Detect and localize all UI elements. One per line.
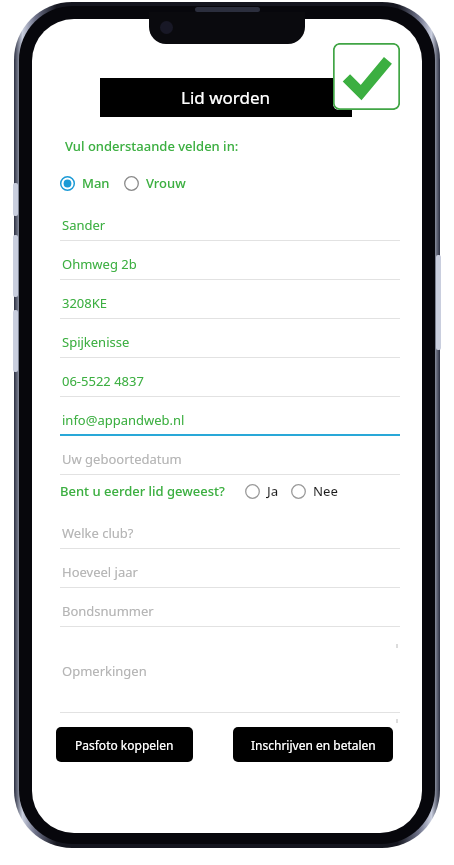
button[interactable]: 3208KE xyxy=(60,286,400,319)
button[interactable]: Pasfoto koppelen xyxy=(56,727,193,762)
staticText: Spijkenisse xyxy=(62,333,130,351)
staticText: Man xyxy=(82,174,110,192)
button[interactable]: Geselecteerd xyxy=(60,176,75,191)
staticText: Opmerkingen xyxy=(62,662,147,680)
staticText: Nee xyxy=(313,482,339,500)
staticText: Hoeveel jaar xyxy=(62,563,138,581)
staticText: Inschrijven en betalen xyxy=(251,737,376,753)
staticText: 3208KE xyxy=(62,294,108,312)
staticText: 06-5522 4837 xyxy=(62,372,144,390)
button[interactable]: Opmerkingen xyxy=(60,635,400,713)
staticText: Vul onderstaande velden in: xyxy=(65,137,239,155)
staticText: info@appandweb.nl xyxy=(62,411,185,429)
button[interactable]: Inschrijven en betalen xyxy=(233,727,393,762)
button[interactable]: Niet geselecteerd xyxy=(245,484,260,499)
button[interactable]: Sander xyxy=(60,208,400,241)
staticText: Bent u eerder lid geweest? xyxy=(60,482,225,500)
button[interactable]: Niet geselecteerd xyxy=(291,484,306,499)
button[interactable]: Hoeveel jaar xyxy=(60,555,400,588)
button[interactable]: 06-5522 4837 xyxy=(60,364,400,397)
button[interactable]: Uw geboortedatum xyxy=(60,442,400,475)
button[interactable]: Welke club? xyxy=(60,516,400,549)
staticText: Uw geboortedatum xyxy=(62,450,182,468)
staticText: Vrouw xyxy=(146,174,186,192)
staticText: Pasfoto koppelen xyxy=(75,737,174,753)
staticText: Ja xyxy=(267,482,279,500)
staticText: Sander xyxy=(62,216,106,234)
button[interactable]: Bondsnummer xyxy=(60,594,400,627)
button[interactable]: Bevestigen xyxy=(333,43,400,110)
button[interactable]: Lid worden xyxy=(100,78,352,117)
button[interactable]: Niet geselecteerd xyxy=(124,176,139,191)
staticText: Bondsnummer xyxy=(62,602,154,620)
button[interactable]: Spijkenisse xyxy=(60,325,400,358)
staticText: Lid worden xyxy=(181,86,271,109)
staticText: Welke club? xyxy=(62,524,134,542)
button[interactable]: info@appandweb.nl xyxy=(60,403,400,436)
button[interactable]: Ohmweg 2b xyxy=(60,247,400,280)
staticText: Ohmweg 2b xyxy=(62,255,137,273)
